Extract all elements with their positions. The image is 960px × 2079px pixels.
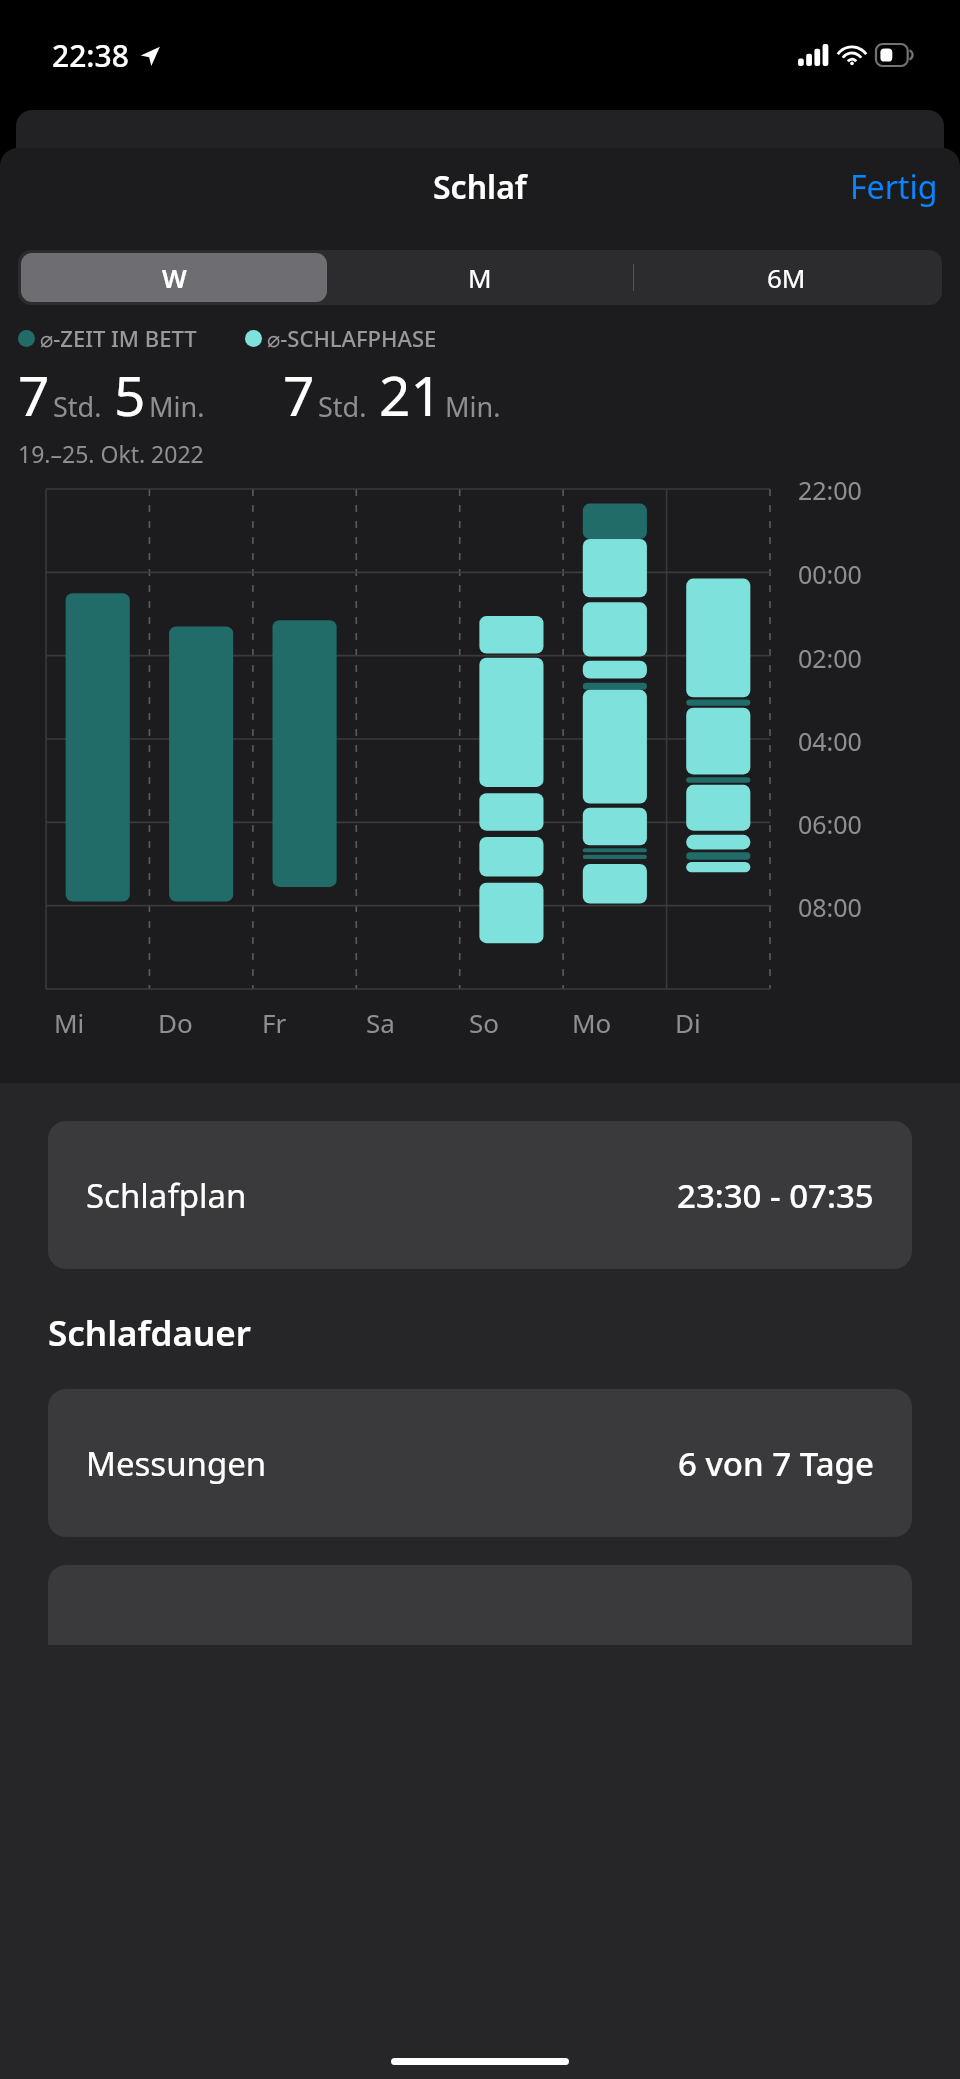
button[interactable]: W <box>21 253 327 302</box>
staticText: So <box>469 1005 500 1040</box>
staticText: Mi <box>54 1005 85 1040</box>
staticText: W <box>162 260 187 295</box>
staticText: 7 <box>18 357 50 432</box>
staticText: 23:30 - 07:35 <box>677 1173 874 1218</box>
staticText: 6M <box>767 260 806 295</box>
staticText: ⌀-SCHLAFPHASE <box>267 323 437 353</box>
staticText: Sa <box>366 1005 395 1040</box>
staticText: Min. <box>445 388 501 425</box>
staticText: Messungen <box>86 1441 267 1486</box>
staticText: Schlafdauer <box>48 1309 251 1357</box>
staticText: M <box>468 260 492 295</box>
staticText: Min. <box>149 388 205 425</box>
staticText: 04:00 <box>798 724 862 758</box>
staticText: 7 <box>283 357 315 432</box>
staticText: Fertig <box>850 165 938 209</box>
staticText: 02:00 <box>798 641 862 675</box>
staticText: Std. <box>53 388 102 425</box>
staticText: 22:38 <box>52 35 129 76</box>
staticText: Di <box>675 1005 701 1040</box>
button[interactable]: Messungen <box>48 1389 912 1537</box>
staticText: 22:00 <box>798 473 862 507</box>
staticText: Std. <box>318 388 367 425</box>
staticText: Schlaf <box>433 165 527 209</box>
button[interactable]: 6M <box>633 253 939 302</box>
staticText: Schlafplan <box>86 1173 247 1218</box>
staticText: Do <box>158 1005 193 1040</box>
staticText: Mo <box>572 1005 612 1040</box>
staticText: 08:00 <box>798 890 862 924</box>
button[interactable]: M <box>327 253 633 302</box>
staticText: ⌀-ZEIT IM BETT <box>40 323 197 353</box>
staticText: 19.–25. Okt. 2022 <box>18 438 204 469</box>
staticText: Fr <box>262 1005 287 1040</box>
staticText: 5 <box>114 357 146 432</box>
staticText: 06:00 <box>798 807 862 841</box>
button[interactable]: Schlafplan <box>48 1121 912 1269</box>
staticText: 00:00 <box>798 557 862 591</box>
button[interactable]: Fertig <box>828 157 960 217</box>
staticText: 6 von 7 Tage <box>678 1441 874 1486</box>
staticText: 21 <box>379 357 442 432</box>
